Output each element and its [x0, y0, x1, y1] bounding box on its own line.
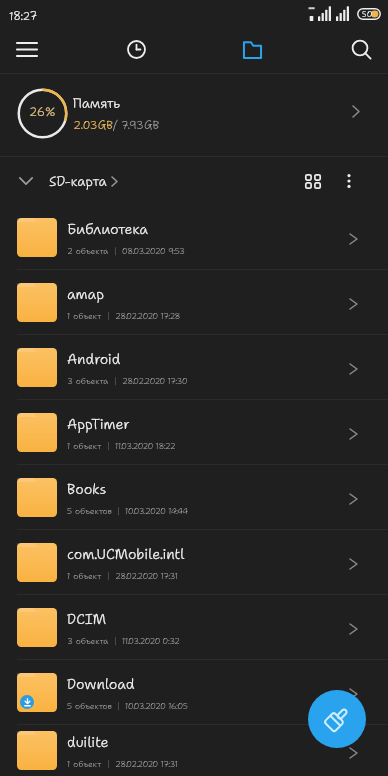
staticText: |	[107, 758, 110, 769]
staticText: Android	[67, 349, 121, 368]
staticText: |	[107, 440, 110, 451]
staticText: 50	[362, 9, 373, 20]
staticText: AppTimer	[67, 414, 130, 433]
staticText: 26%	[29, 104, 56, 120]
staticText: 08.03.2020 9:53	[122, 245, 185, 256]
staticText: 1 объект	[67, 310, 102, 321]
staticText: |	[107, 570, 110, 581]
staticText: Download	[67, 674, 135, 693]
staticText: Библиотека	[67, 219, 148, 238]
button[interactable]: Search	[335, 26, 388, 73]
staticText: 1 объект	[67, 440, 102, 451]
staticText: 28.02.2020 17:31	[115, 570, 178, 581]
button[interactable]: duilite	[0, 725, 388, 776]
staticText: |	[107, 310, 110, 321]
staticText: |	[114, 635, 117, 646]
staticText: com.UCMobile.intl	[67, 544, 185, 563]
staticText: 5 объектов	[67, 700, 112, 711]
staticText: 11.03.2020 18:22	[115, 440, 176, 451]
staticText: 28.02.2020 17:28	[115, 310, 181, 321]
staticText: |	[117, 505, 120, 516]
button[interactable]: Android	[0, 335, 388, 400]
staticText: |	[117, 700, 120, 711]
button[interactable]: amap	[0, 270, 388, 335]
staticText: / 7.93GB	[113, 117, 160, 132]
staticText: Память	[73, 94, 121, 112]
staticText: SD-карта	[49, 172, 107, 190]
button[interactable]: AppTimer	[0, 400, 388, 465]
staticText: 11.03.2020 0:32	[122, 635, 180, 646]
button[interactable]: Collapse	[18, 173, 34, 189]
button[interactable]: Books	[0, 465, 388, 530]
staticText: amap	[67, 284, 105, 303]
button[interactable]: 26%	[0, 74, 388, 156]
staticText: duilite	[67, 732, 109, 751]
staticText: 28.02.2020 17:31	[115, 758, 178, 769]
staticText: 3 объекта	[67, 375, 109, 386]
staticText: 3 объекта	[67, 635, 109, 646]
button[interactable]: Библиотека	[0, 205, 388, 270]
staticText: 2.03GB	[73, 117, 113, 132]
staticText: 10.03.2020 16:05	[125, 700, 188, 711]
button[interactable]: com.UCMobile.intl	[0, 530, 388, 595]
staticText: |	[114, 375, 117, 386]
staticText: 1 объект	[67, 758, 102, 769]
staticText: 1 объект	[67, 570, 102, 581]
button[interactable]: Recent files	[53, 26, 219, 73]
button[interactable]: Grid view	[298, 166, 328, 196]
button[interactable]: DCIM	[0, 595, 388, 660]
staticText: 10.03.2020 14:44	[125, 505, 188, 516]
button[interactable]: More options	[334, 166, 364, 196]
staticText: 28.02.2020 17:30	[122, 375, 188, 386]
button[interactable]: Download	[0, 660, 388, 725]
button[interactable]: SD-карта	[49, 172, 118, 190]
staticText: DCIM	[67, 609, 107, 628]
staticText: 18:27	[9, 9, 38, 24]
staticText: 5 объектов	[67, 505, 112, 516]
button[interactable]: Files	[219, 26, 285, 73]
staticText: |	[114, 245, 117, 256]
button[interactable]: Menu	[0, 26, 53, 73]
staticText: 2 объекта	[67, 245, 109, 256]
staticText: Books	[67, 479, 107, 498]
button[interactable]: Clean up storage	[308, 690, 366, 748]
